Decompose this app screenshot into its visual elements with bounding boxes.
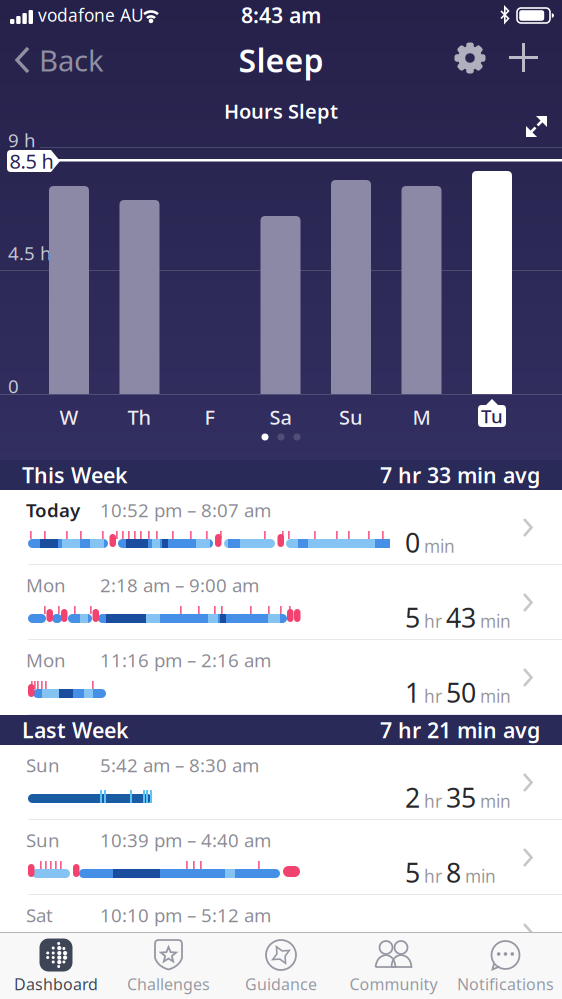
staticText: This Week (22, 461, 128, 489)
staticText: W (59, 404, 78, 430)
staticText: Dashboard (14, 973, 98, 995)
staticText: Mon (26, 648, 66, 672)
staticText: min (465, 864, 496, 887)
staticText: Guidance (245, 973, 317, 995)
staticText: Tu (481, 404, 503, 428)
staticText: Su (339, 404, 363, 430)
staticText: min (424, 534, 455, 557)
staticText: min (480, 789, 511, 812)
staticText: Mon (26, 573, 66, 597)
staticText: Th (127, 404, 151, 430)
staticText: Today (26, 498, 80, 522)
button[interactable]: Back (14, 40, 124, 80)
button[interactable]: Challenges (116, 936, 220, 998)
staticText: min (480, 684, 511, 707)
staticText: hr (424, 864, 442, 887)
button[interactable]: Mon (0, 565, 562, 640)
staticText: Sat (26, 903, 53, 927)
staticText: 0 (405, 525, 420, 560)
button[interactable]: Sun (0, 745, 562, 820)
staticText: 11:16 pm – 2:16 am (100, 648, 271, 672)
staticText: 9 h (8, 128, 36, 152)
button[interactable]: Today (0, 490, 562, 565)
button[interactable]: Sun (0, 820, 562, 895)
button[interactable]: Dashboard (4, 936, 108, 998)
staticText: 10:39 pm – 4:40 am (100, 828, 271, 852)
staticText: min (480, 609, 511, 632)
staticText: 7 hr 21 min avg (380, 716, 540, 744)
button[interactable]: Sat (0, 895, 562, 970)
button[interactable] (509, 43, 538, 72)
staticText: 10:52 pm – 8:07 am (100, 498, 271, 522)
staticText: 5 (405, 855, 420, 890)
staticText: hr (424, 789, 442, 812)
staticText: Back (39, 40, 104, 79)
staticText: vodafone AU (38, 3, 144, 26)
staticText: hr (424, 684, 442, 707)
staticText: 2 (405, 780, 420, 815)
staticText: Last Week (22, 716, 129, 744)
staticText: Notifications (457, 973, 554, 995)
staticText: 35 (446, 780, 476, 815)
staticText: Hours Slept (224, 98, 338, 124)
staticText: Sa (269, 404, 291, 430)
button[interactable]: Community (341, 936, 445, 998)
staticText: 2:18 am – 9:00 am (100, 573, 259, 597)
staticText: 1 (405, 675, 420, 710)
staticText: Sun (26, 753, 60, 777)
staticText: M (412, 404, 430, 430)
staticText: F (204, 404, 215, 430)
button[interactable]: Guidance (229, 936, 333, 998)
staticText: 0 (8, 374, 19, 398)
button[interactable]: Mon (0, 640, 562, 715)
staticText: Sun (26, 828, 60, 852)
staticText: hr (424, 609, 442, 632)
staticText: 8 (446, 855, 461, 890)
staticText: 5:42 am – 8:30 am (100, 753, 259, 777)
staticText: 7 hr 33 min avg (380, 461, 540, 489)
staticText: 8:43 am (241, 1, 321, 29)
staticText: Sleep (238, 39, 323, 81)
staticText: 43 (446, 600, 476, 635)
button[interactable] (452, 40, 488, 76)
staticText: 10:10 pm – 5:12 am (100, 903, 271, 927)
staticText: 5 (405, 600, 420, 635)
staticText: 50 (446, 675, 476, 710)
staticText: Challenges (127, 973, 210, 995)
staticText: Community (349, 973, 437, 995)
button[interactable]: Notifications (453, 936, 557, 998)
staticText: 4.5 h (8, 241, 52, 265)
staticText: 8.5 h (9, 148, 53, 174)
